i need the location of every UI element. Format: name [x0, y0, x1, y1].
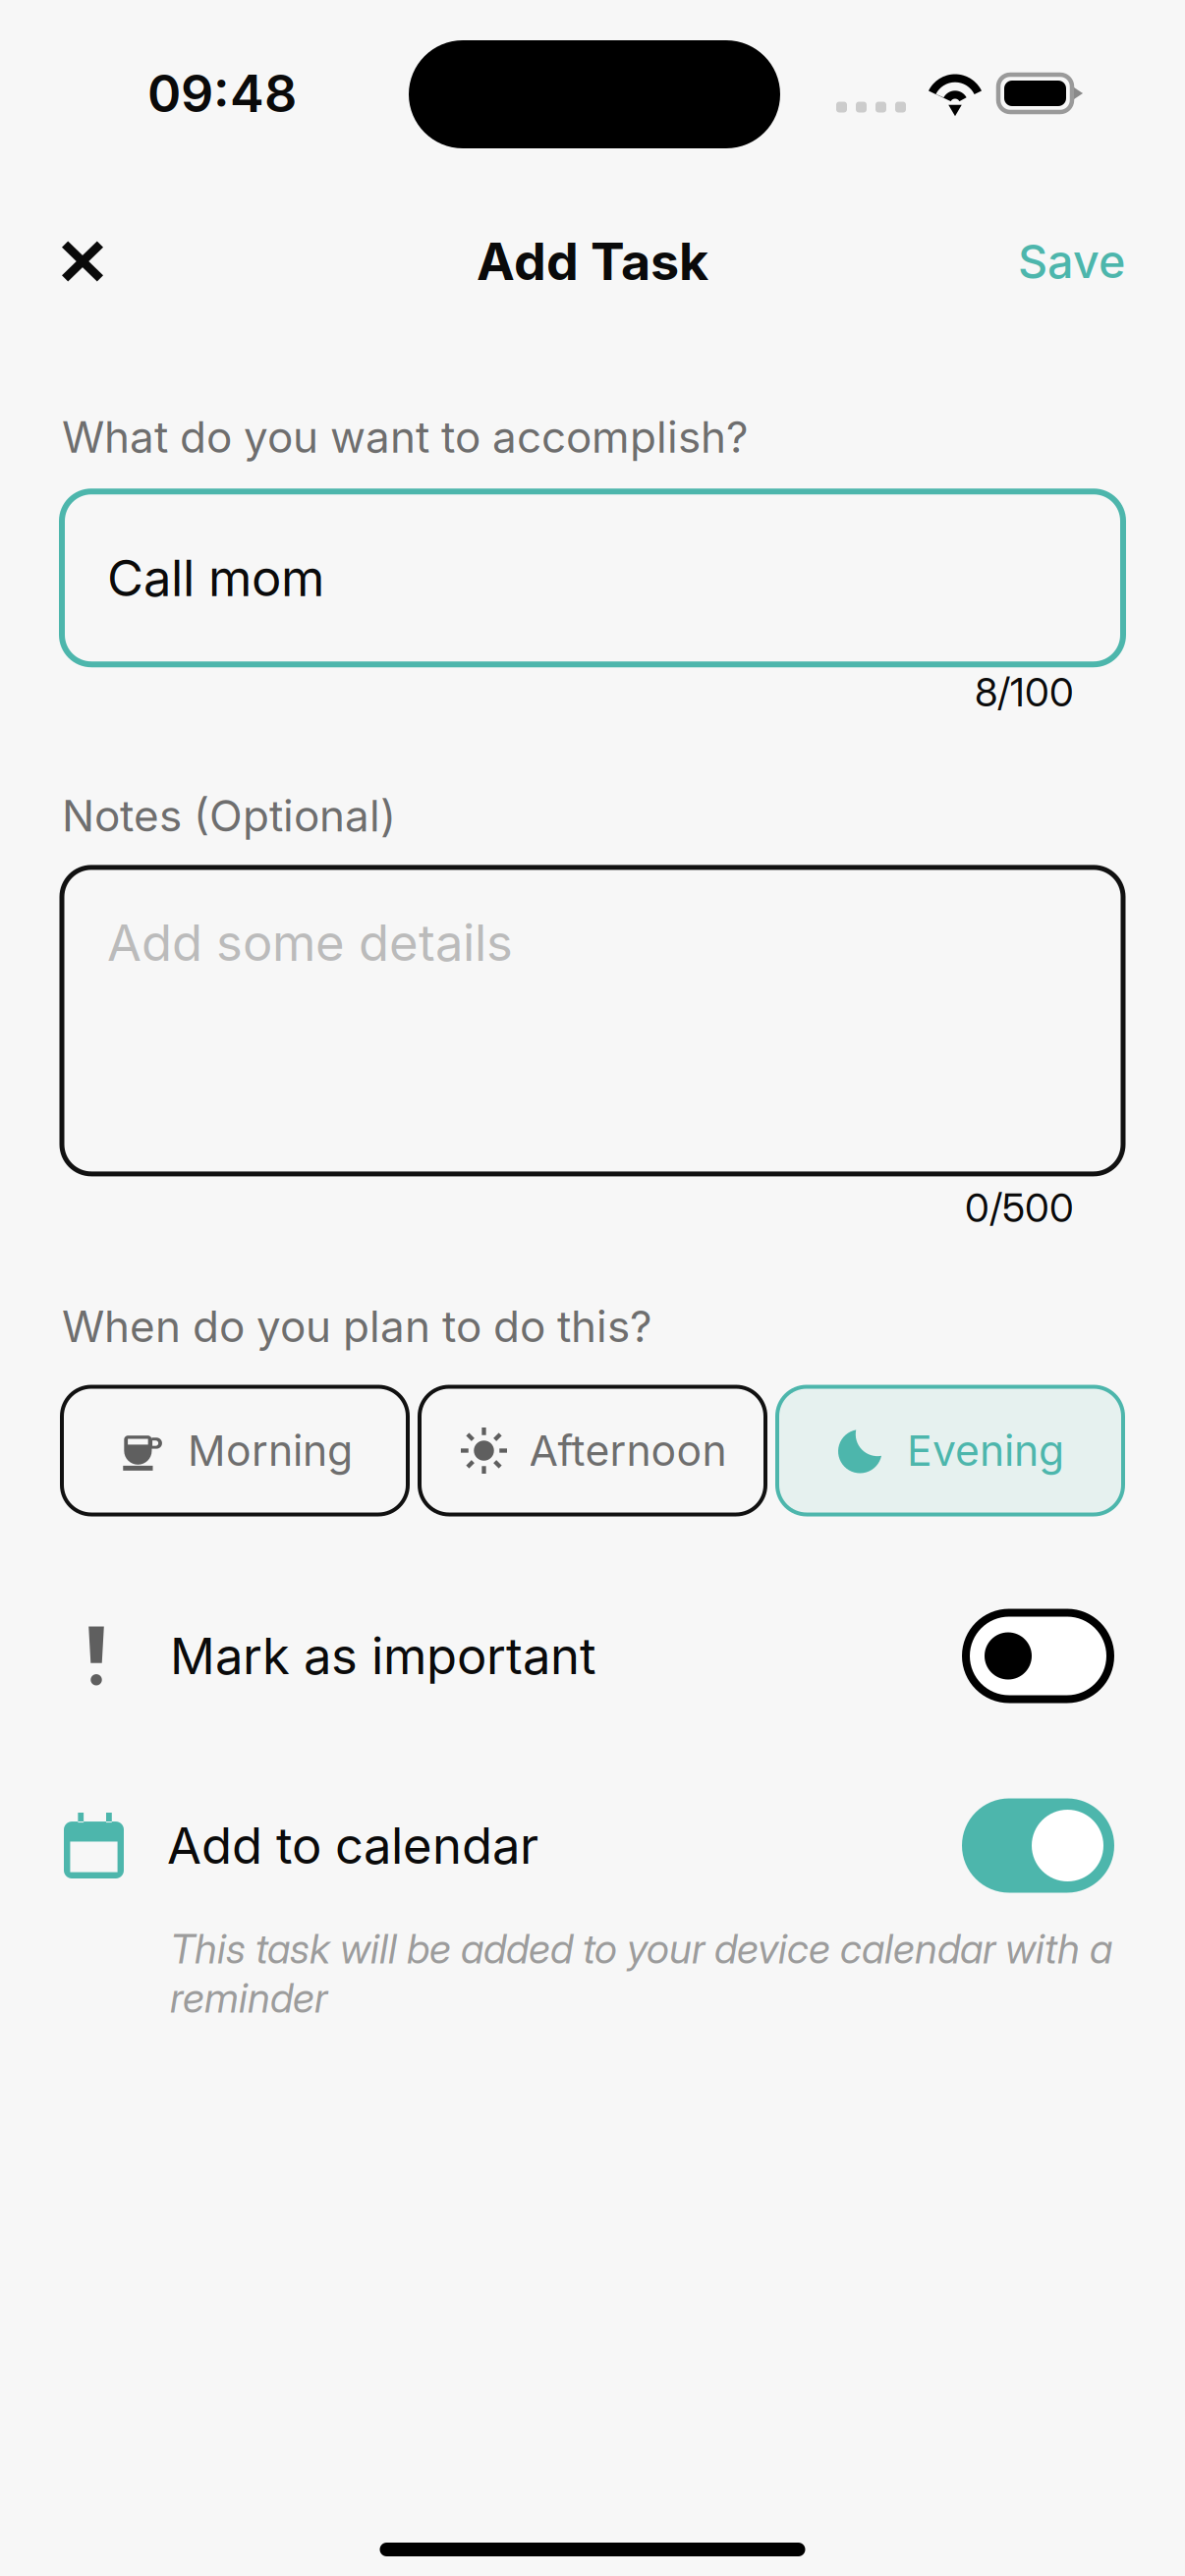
staticText: 0/500: [965, 1184, 1074, 1231]
button[interactable]: Evening: [777, 1387, 1123, 1514]
staticText: Morning: [188, 1425, 353, 1476]
staticText: Save: [1018, 234, 1125, 289]
staticText: Mark as important: [170, 1626, 596, 1686]
staticText: Evening: [907, 1425, 1064, 1476]
staticText: Afternoon: [529, 1425, 727, 1476]
staticText: This task will be added to your device c…: [170, 1924, 1112, 2022]
staticText: Notes (Optional): [62, 790, 396, 842]
button[interactable]: Add to calendar: [62, 1798, 1123, 1893]
staticText: What do you want to accomplish?: [62, 411, 748, 463]
staticText: Add some details: [107, 913, 513, 973]
button[interactable]: Afternoon: [420, 1387, 765, 1514]
staticText: 09:48: [147, 62, 297, 124]
staticText: Add Task: [477, 230, 708, 292]
button[interactable]: Save: [1004, 216, 1139, 307]
staticText: 8/100: [975, 668, 1074, 716]
button[interactable]: Mark as important: [62, 1609, 1123, 1703]
staticText: When do you plan to do this?: [62, 1300, 651, 1352]
staticText: Add to calendar: [167, 1815, 538, 1876]
button[interactable]: Close: [40, 220, 125, 303]
button[interactable]: Morning: [62, 1387, 408, 1514]
staticText: Call mom: [107, 548, 324, 608]
